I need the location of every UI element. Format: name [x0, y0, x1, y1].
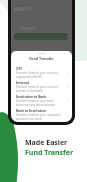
staticText: Made Easier: [25, 138, 68, 148]
other: Institution to Bank: [66, 99, 69, 102]
staticText: Transfer funds to your institution accou…: [16, 113, 65, 120]
other: Internal: [66, 85, 69, 88]
other: UPI: [66, 71, 69, 74]
button[interactable]: Bank to Institution: [11, 107, 72, 121]
button[interactable]: Institution to Bank: [11, 93, 72, 107]
staticText: Transfer funds to your account registere…: [16, 71, 65, 78]
staticText: Internal: [16, 81, 29, 85]
staticText: Transfer funds to your account present i…: [16, 85, 65, 92]
staticText: Fund Transfer: [11, 56, 72, 61]
staticText: UPI: [16, 67, 22, 71]
staticText: Fund Transfer: [25, 148, 74, 158]
staticText: Institution to Bank: [16, 95, 47, 99]
button[interactable]: UPI: [11, 65, 72, 79]
staticText: Bank to Institution: [16, 109, 47, 113]
other: Bank to Institution: [66, 113, 69, 116]
staticText: Transfer funds to your bank account usin…: [16, 99, 65, 106]
button[interactable]: Internal: [11, 79, 72, 93]
